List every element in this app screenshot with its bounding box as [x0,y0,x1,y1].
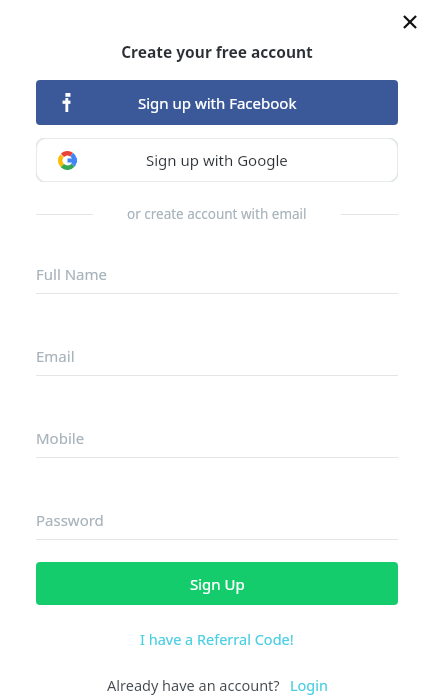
staticText: Sign up with Facebook [138,93,297,113]
button[interactable]: Email [36,346,398,376]
staticText: Create your free account [36,41,398,62]
button[interactable]: Sign up with Facebook [36,80,398,125]
staticText: Full Name [36,264,107,284]
staticText: Already have an account? [107,675,280,695]
button[interactable]: Password [36,510,398,540]
button[interactable]: Full Name [36,264,398,294]
staticText: or create account with email [127,205,307,223]
staticText: Sign Up [190,574,245,594]
button[interactable]: Close [392,4,428,40]
staticText: I have a Referral Code! [140,629,294,649]
staticText: Mobile [36,428,85,448]
staticText: Sign up with Google [146,150,288,170]
button[interactable]: Mobile [36,428,398,458]
staticText: Login [290,675,328,695]
staticText: Password [36,510,104,530]
button[interactable]: I have a Referral Code! [36,629,398,649]
button[interactable]: Sign Up [36,562,398,605]
button[interactable]: Sign up with Google [36,138,398,182]
button[interactable]: Login [290,675,328,695]
staticText: Email [36,346,75,366]
